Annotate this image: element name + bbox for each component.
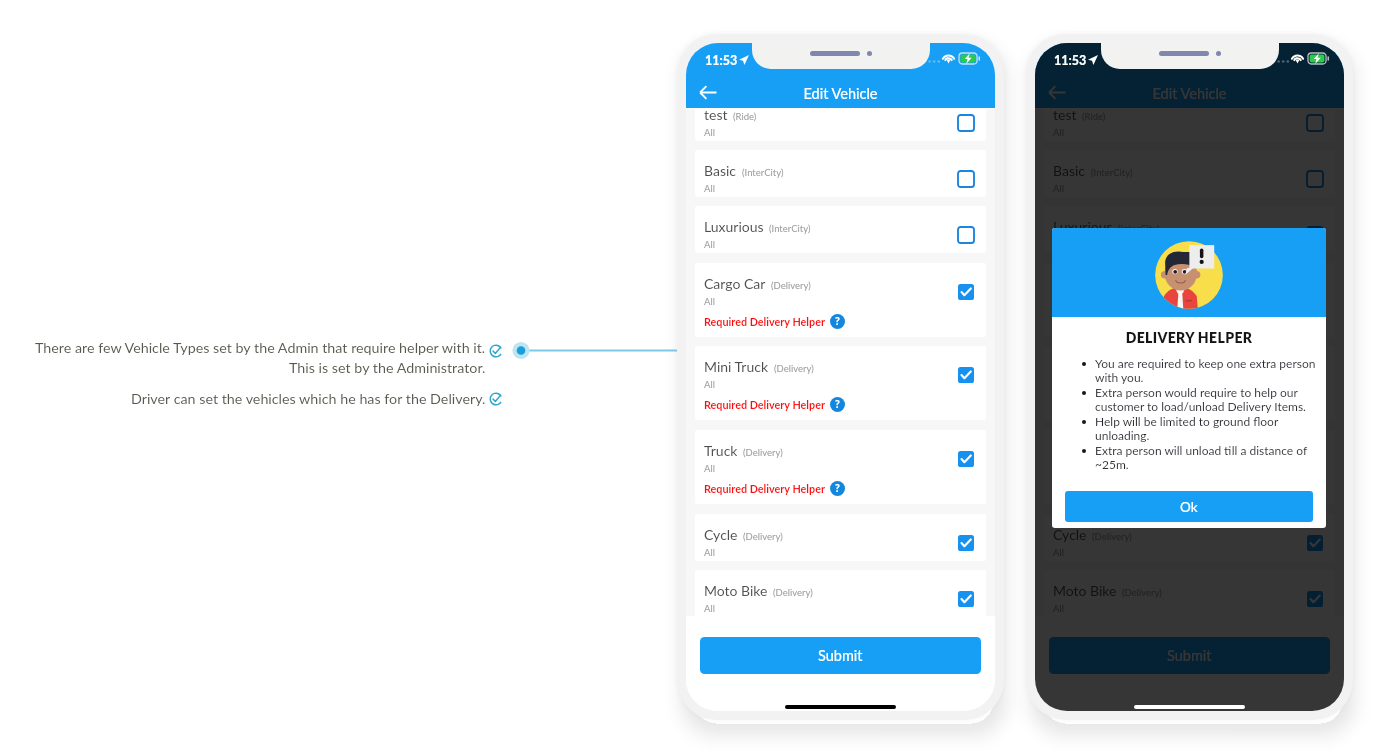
button[interactable]: Not selected test xyxy=(958,115,974,131)
button[interactable]: Selected Truck xyxy=(958,451,974,467)
staticText: (Delivery) xyxy=(773,587,813,598)
staticText: All xyxy=(704,183,715,194)
staticText: Required Delivery Helper xyxy=(704,398,825,411)
staticText: Edit Vehicle xyxy=(1035,85,1344,102)
staticText: (Delivery) xyxy=(774,363,814,374)
staticText: Required Delivery Helper xyxy=(1053,482,1174,495)
staticText: Mini Truck xyxy=(1053,358,1118,375)
staticText: All xyxy=(1053,127,1064,138)
staticText: Required Delivery Helper xyxy=(704,482,825,495)
button[interactable]: Delivery helper info xyxy=(1179,314,1194,329)
staticText: Cycle xyxy=(704,526,738,543)
button[interactable]: Moto Bike xyxy=(1044,570,1335,616)
staticText: (InterCity) xyxy=(769,223,811,234)
staticText: Required Delivery Helper xyxy=(704,315,825,328)
staticText: Required Delivery Helper xyxy=(1053,398,1174,411)
button[interactable]: Back xyxy=(696,80,721,105)
staticText: All xyxy=(704,603,715,614)
staticText: Luxurious xyxy=(1053,218,1113,235)
staticText: (Ride) xyxy=(1082,111,1106,122)
staticText: DELIVERY HELPER xyxy=(1052,329,1326,346)
staticText: (Delivery) xyxy=(1122,587,1162,598)
button[interactable]: Back xyxy=(1045,80,1070,105)
staticText: (Delivery) xyxy=(1092,447,1132,458)
staticText: Help will be limited to ground floor unl… xyxy=(1095,414,1316,443)
staticText: ? xyxy=(1184,315,1189,328)
staticText: Truck xyxy=(1053,442,1087,459)
staticText: ? xyxy=(1184,398,1189,411)
staticText: Cargo Car xyxy=(704,275,766,292)
staticText: There are few Vehicle Types set by the A… xyxy=(35,339,486,356)
button[interactable]: Selected Cycle xyxy=(1307,535,1323,551)
button[interactable]: test xyxy=(695,109,986,141)
staticText: Truck xyxy=(704,442,738,459)
staticText: All xyxy=(1053,547,1064,558)
staticText: (InterCity) xyxy=(1118,223,1160,234)
staticText: (Delivery) xyxy=(743,447,783,458)
staticText: (Delivery) xyxy=(743,531,783,542)
button[interactable]: Selected Cargo Car xyxy=(958,284,974,300)
button[interactable]: Delivery helper info xyxy=(1179,397,1194,412)
staticText: Moto Bike xyxy=(1053,582,1117,599)
staticText: This is set by the Administrator. xyxy=(289,359,486,376)
button[interactable]: Moto Bike xyxy=(695,570,986,616)
button[interactable]: Not selected Basic xyxy=(1307,171,1323,187)
button[interactable]: Luxurious xyxy=(695,206,986,253)
button[interactable]: Truck xyxy=(1044,430,1335,504)
button[interactable]: Cargo Car xyxy=(695,263,986,337)
staticText: (InterCity) xyxy=(1091,167,1133,178)
button[interactable]: Selected Moto Bike xyxy=(958,591,974,607)
button[interactable]: Not selected Luxurious xyxy=(1307,227,1323,243)
button[interactable]: Basic xyxy=(1044,150,1335,197)
button[interactable]: Delivery helper info xyxy=(1179,481,1194,496)
button[interactable]: Delivery helper info xyxy=(830,314,845,329)
staticText: All xyxy=(704,547,715,558)
button[interactable]: Cycle xyxy=(695,514,986,561)
staticText: test xyxy=(704,109,728,123)
button[interactable]: Not selected test xyxy=(1307,115,1323,131)
staticText: Edit Vehicle xyxy=(686,85,995,102)
button[interactable]: Selected Cycle xyxy=(958,535,974,551)
staticText: Ok xyxy=(1180,499,1198,515)
button[interactable]: Mini Truck xyxy=(695,346,986,420)
button[interactable]: Delivery helper info xyxy=(830,397,845,412)
staticText: All xyxy=(704,127,715,138)
button[interactable]: Delivery helper info xyxy=(830,481,845,496)
button[interactable]: Truck xyxy=(695,430,986,504)
staticText: (Delivery) xyxy=(771,280,811,291)
button[interactable]: Basic xyxy=(695,150,986,197)
staticText: (Delivery) xyxy=(1123,363,1163,374)
button[interactable]: Mini Truck xyxy=(1044,346,1335,420)
button[interactable]: Selected Moto Bike xyxy=(1307,591,1323,607)
staticText: Extra person would require to help our c… xyxy=(1095,385,1316,414)
button[interactable]: Not selected Luxurious xyxy=(958,227,974,243)
button[interactable]: Selected Mini Truck xyxy=(1307,367,1323,383)
button[interactable]: Submit xyxy=(1049,637,1330,674)
button[interactable]: Ok xyxy=(1065,491,1313,522)
button[interactable]: Cargo Car xyxy=(1044,263,1335,337)
staticText: Luxurious xyxy=(704,218,764,235)
button[interactable]: Submit xyxy=(700,637,981,674)
button[interactable]: Luxurious xyxy=(1044,206,1335,253)
button[interactable]: test xyxy=(1044,109,1335,141)
button[interactable]: Selected Mini Truck xyxy=(958,367,974,383)
staticText: Submit xyxy=(1167,647,1212,664)
staticText: All xyxy=(704,379,715,390)
staticText: (Delivery) xyxy=(1120,280,1160,291)
button[interactable]: Not selected Basic xyxy=(958,171,974,187)
staticText: (InterCity) xyxy=(742,167,784,178)
button[interactable]: Cycle xyxy=(1044,514,1335,561)
staticText: Extra person will unload till a distance… xyxy=(1095,443,1316,472)
staticText: ? xyxy=(1184,482,1189,495)
staticText: All xyxy=(704,463,715,474)
staticText: Moto Bike xyxy=(704,582,768,599)
staticText: Cycle xyxy=(1053,526,1087,543)
staticText: Required Delivery Helper xyxy=(1053,315,1174,328)
